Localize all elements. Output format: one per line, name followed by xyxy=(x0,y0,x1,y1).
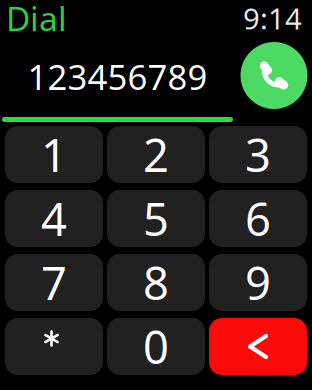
button[interactable]: 123456789 xyxy=(2,36,233,122)
staticText: 3 xyxy=(245,124,271,185)
button[interactable]: 8 xyxy=(107,254,205,311)
button[interactable]: 7 xyxy=(5,254,103,311)
staticText: 0 xyxy=(143,316,169,377)
staticText: 4 xyxy=(41,188,67,249)
button[interactable]: 9 xyxy=(209,254,307,311)
button[interactable]: 0 xyxy=(107,318,205,375)
button[interactable]: Star xyxy=(5,318,103,375)
button[interactable]: 3 xyxy=(209,126,307,183)
button[interactable]: Delete xyxy=(209,318,307,375)
button[interactable]: Dial xyxy=(6,0,67,40)
staticText: Dial xyxy=(6,0,67,40)
staticText: 6 xyxy=(245,188,271,249)
button[interactable]: 4 xyxy=(5,190,103,247)
staticText: 9 xyxy=(245,252,271,313)
staticText: 5 xyxy=(143,188,169,249)
button[interactable]: 2 xyxy=(107,126,205,183)
button[interactable]: 6 xyxy=(209,190,307,247)
staticText: 8 xyxy=(143,252,169,313)
button[interactable]: 1 xyxy=(5,126,103,183)
staticText: 9:14 xyxy=(243,0,302,37)
button[interactable]: 5 xyxy=(107,190,205,247)
button[interactable]: Call xyxy=(240,42,307,109)
staticText: 2 xyxy=(143,124,169,185)
staticText: 1 xyxy=(41,124,67,185)
staticText: 7 xyxy=(41,252,67,313)
staticText: 123456789 xyxy=(27,53,207,99)
